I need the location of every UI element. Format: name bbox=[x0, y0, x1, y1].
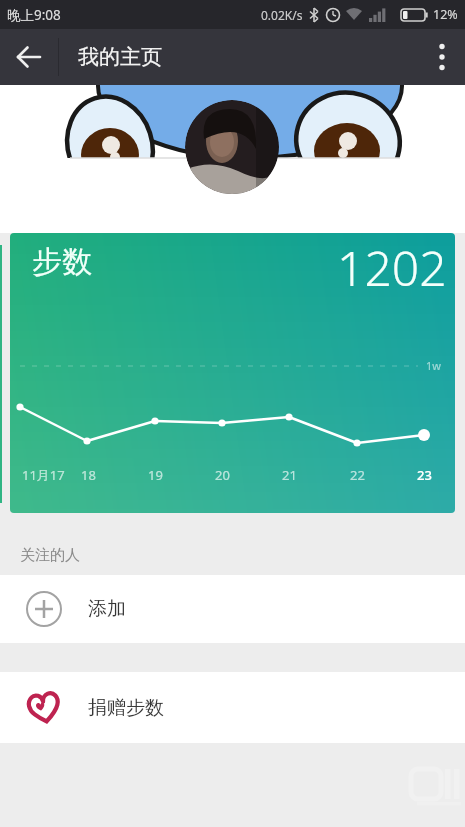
staticText: 12% bbox=[433, 6, 458, 23]
button[interactable] bbox=[0, 29, 58, 85]
staticText: 22 bbox=[350, 466, 365, 484]
staticText: 19 bbox=[148, 466, 163, 484]
staticText: 11月17 bbox=[22, 466, 65, 484]
staticText: 捐赠步数 bbox=[88, 696, 164, 720]
button[interactable]: 捐赠步数 bbox=[0, 672, 465, 743]
staticText: 0.02K/s bbox=[261, 7, 303, 23]
staticText: 步数 bbox=[32, 243, 92, 281]
staticText: 添加 bbox=[88, 597, 126, 621]
button[interactable]: 添加 bbox=[0, 575, 465, 643]
staticText: 23 bbox=[417, 466, 432, 484]
staticText: 20 bbox=[215, 466, 230, 484]
staticText: 关注的人 bbox=[20, 546, 80, 565]
staticText: 晚上9:08 bbox=[7, 6, 61, 24]
staticText: 我的主页 bbox=[78, 44, 162, 70]
staticText: 21 bbox=[282, 466, 297, 484]
staticText: 1202 bbox=[337, 235, 447, 300]
button[interactable] bbox=[417, 29, 465, 85]
staticText: 18 bbox=[81, 466, 96, 484]
staticText: 1w bbox=[426, 358, 441, 373]
button[interactable]: 步数 bbox=[10, 233, 455, 513]
